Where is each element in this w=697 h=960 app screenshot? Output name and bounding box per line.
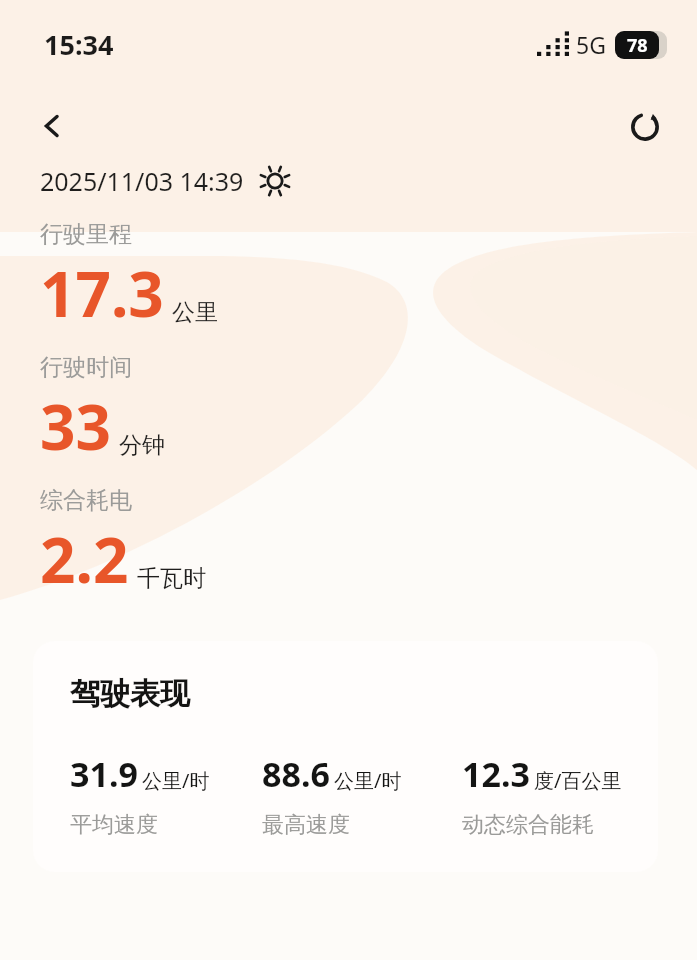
staticText: 平均速度: [70, 811, 158, 839]
staticText: 行驶里程: [40, 220, 132, 249]
staticText: 33: [40, 384, 111, 468]
staticText: 分钟: [119, 431, 165, 460]
staticText: 动态综合能耗: [462, 811, 594, 839]
staticText: 5G: [576, 29, 606, 60]
staticText: 行驶时间: [40, 353, 132, 382]
staticText: 公里/时: [142, 767, 210, 794]
staticText: 2.2: [40, 517, 129, 601]
staticText: 驾驶表现: [70, 675, 190, 713]
staticText: 公里/时: [334, 767, 402, 794]
staticText: 综合耗电: [40, 486, 132, 515]
button[interactable]: Back: [26, 100, 78, 152]
staticText: 15:34: [44, 26, 114, 63]
staticText: 度/百公里: [534, 767, 622, 794]
staticText: 公里: [172, 298, 218, 327]
staticText: 17.3: [40, 251, 164, 335]
staticText: 千瓦时: [137, 564, 206, 593]
staticText: 2025/11/03 14:39: [40, 164, 244, 198]
staticText: 31.9: [70, 751, 138, 797]
staticText: 88.6: [262, 751, 330, 797]
staticText: 最高速度: [262, 811, 350, 839]
button[interactable]: 驾驶表现: [33, 641, 658, 872]
staticText: 78: [627, 33, 648, 58]
staticText: 12.3: [462, 751, 530, 797]
button[interactable]: Refresh: [619, 100, 671, 152]
